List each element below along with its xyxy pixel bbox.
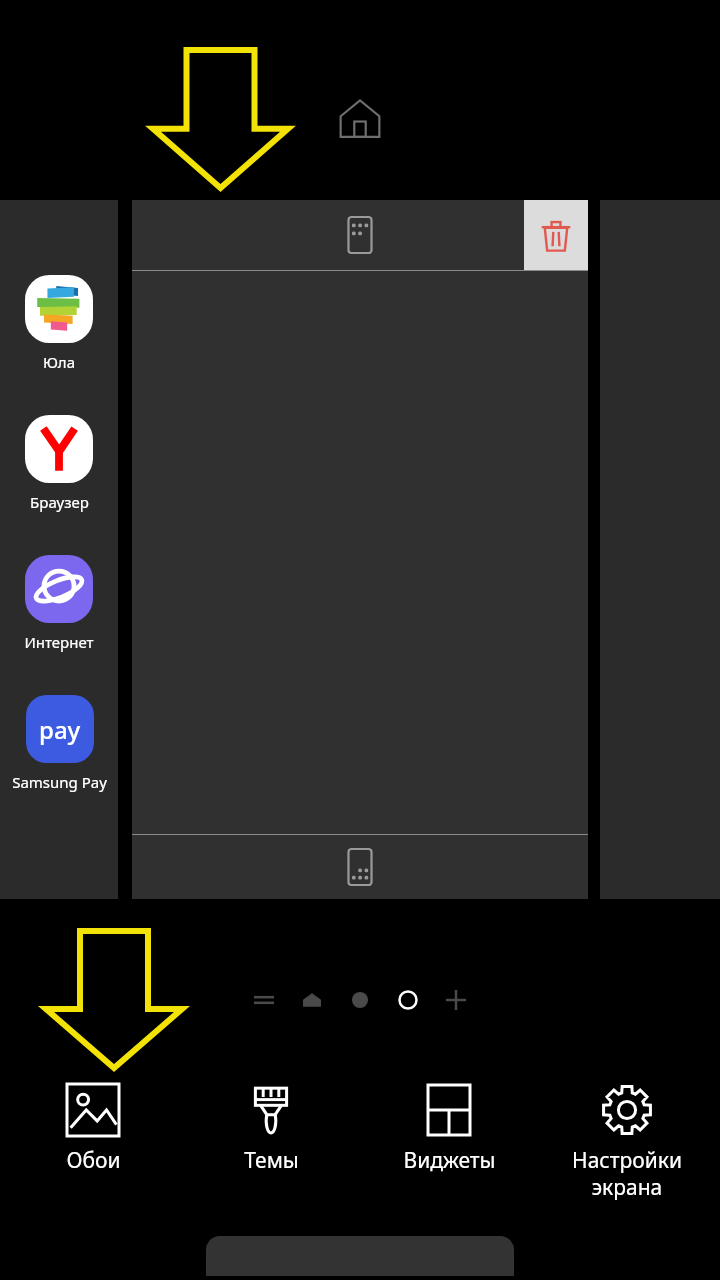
staticText: Интернет — [24, 632, 94, 652]
button[interactable]: Home — [332, 90, 388, 146]
button[interactable]: Виджеты — [364, 1078, 534, 1179]
button[interactable]: Юла — [21, 275, 97, 372]
button[interactable]: Add page — [436, 980, 476, 1020]
staticText: Юла — [43, 352, 75, 372]
staticText: Виджеты — [403, 1146, 496, 1175]
button[interactable]: Page 3 — [340, 980, 380, 1020]
staticText: pay — [39, 713, 81, 746]
button[interactable]: Интернет — [20, 555, 98, 652]
button[interactable]: Home page — [292, 980, 332, 1020]
button[interactable]: Браузер — [21, 415, 97, 512]
button[interactable]: Настройки экрана — [542, 1078, 712, 1205]
button[interactable]: App list widget — [132, 200, 588, 899]
staticText: Темы — [244, 1146, 299, 1175]
button[interactable]: Обои — [8, 1078, 178, 1179]
button[interactable]: Юла — [0, 200, 118, 899]
button[interactable]: Widget — [333, 840, 387, 894]
button[interactable]: Remove page — [524, 200, 588, 271]
staticText: Samsung Pay — [12, 772, 107, 792]
button[interactable]: App list widget — [333, 209, 387, 263]
staticText: Браузер — [30, 492, 89, 512]
staticText: Обои — [66, 1146, 121, 1175]
staticText: Настройки экрана — [572, 1146, 682, 1201]
button[interactable]: pay — [8, 695, 111, 792]
button[interactable]: Apps page — [244, 980, 284, 1020]
button[interactable]: Темы — [186, 1078, 356, 1179]
button[interactable]: Current page — [388, 980, 428, 1020]
